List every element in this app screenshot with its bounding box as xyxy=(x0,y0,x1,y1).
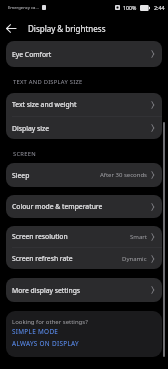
staticText: 100% xyxy=(123,4,137,11)
button[interactable]: Sleep xyxy=(6,163,162,187)
staticText: Eye Comfort xyxy=(12,50,52,59)
button[interactable]: Display size xyxy=(6,117,162,139)
staticText: Smart xyxy=(130,233,147,241)
staticText: Screen resolution xyxy=(12,232,68,241)
staticText: Sleep xyxy=(12,171,30,180)
staticText: SCREEN xyxy=(13,150,36,158)
staticText: Emergency ca… xyxy=(8,5,39,11)
staticText: Colour mode & temperature xyxy=(12,202,103,211)
button[interactable]: Screen resolution xyxy=(6,226,162,247)
staticText: Dynamic xyxy=(122,255,147,263)
button[interactable]: Back xyxy=(0,17,22,39)
staticText: More display settings xyxy=(12,286,81,295)
button[interactable]: Colour mode & temperature xyxy=(6,195,162,218)
staticText: Screen refresh rate xyxy=(12,254,73,263)
staticText: Display size xyxy=(12,124,49,133)
button[interactable]: Text size and weight xyxy=(6,93,162,116)
staticText: After 30 seconds xyxy=(100,171,147,179)
staticText: Looking for other settings? xyxy=(12,318,88,326)
button[interactable]: ALWAYS ON DISPLAY xyxy=(12,339,79,348)
button[interactable]: Screen refresh rate xyxy=(6,248,162,269)
staticText: Text size and weight xyxy=(12,100,77,109)
button[interactable]: SIMPLE MODE xyxy=(12,327,59,336)
button[interactable]: More display settings xyxy=(6,278,162,302)
staticText: Display & brightness xyxy=(28,23,106,34)
button[interactable]: Eye Comfort xyxy=(6,41,162,67)
staticText: 2:44 xyxy=(154,4,165,11)
staticText: TEXT AND DISPLAY SIZE xyxy=(13,78,83,86)
